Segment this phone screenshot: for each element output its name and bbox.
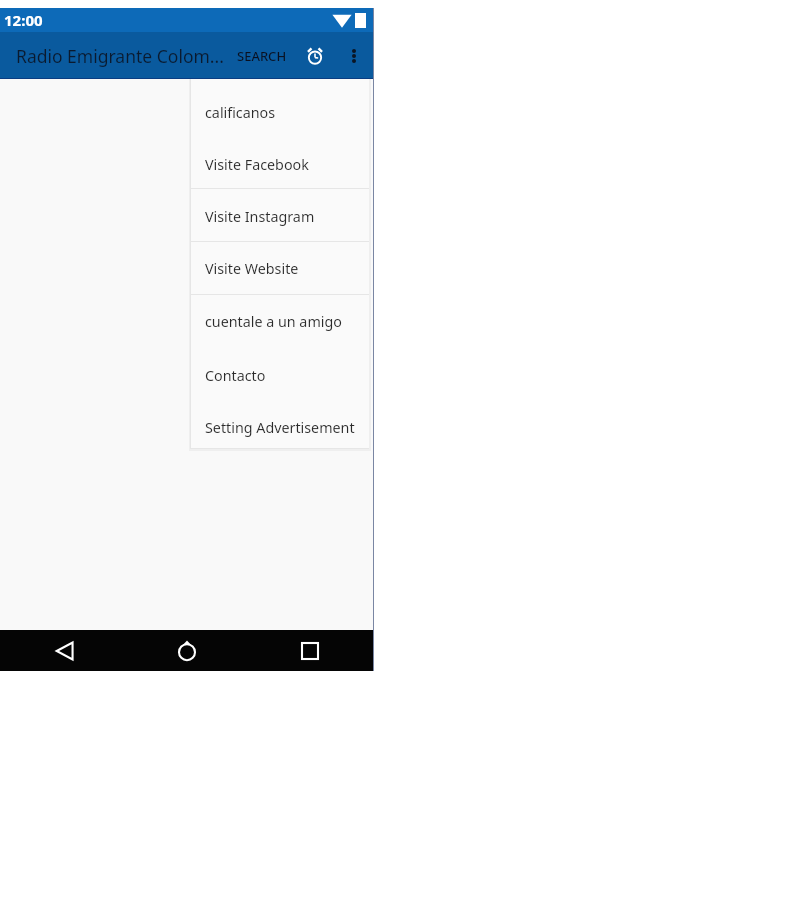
button[interactable]: Back [41,630,89,671]
staticText: cuentale a un amigo [205,312,342,331]
button[interactable]: Contacto [191,349,369,401]
staticText: Visite Instagram [205,207,315,226]
button[interactable]: More options [336,38,372,74]
button[interactable]: cuentale a un amigo [191,295,369,347]
staticText: calificanos [205,103,276,122]
button[interactable]: Visite Website [191,242,369,294]
button[interactable]: Home [163,630,211,671]
staticText: SEARCH [237,47,287,65]
button[interactable]: Setting Advertisement [191,401,369,453]
button[interactable]: Visite Facebook [191,138,369,190]
button[interactable]: SEARCH [229,37,295,75]
staticText: Setting Advertisement [205,418,355,437]
staticText: Visite Website [205,259,299,278]
staticText: Radio Emigrante Colom... [16,44,226,68]
button[interactable]: calificanos [191,86,369,138]
staticText: Visite Facebook [205,155,309,174]
button[interactable]: Recents [286,630,334,671]
button[interactable]: Visite Instagram [191,190,369,242]
staticText: Contacto [205,366,266,385]
button[interactable]: Alarm [296,37,334,75]
staticText: 12:00 [4,10,43,30]
